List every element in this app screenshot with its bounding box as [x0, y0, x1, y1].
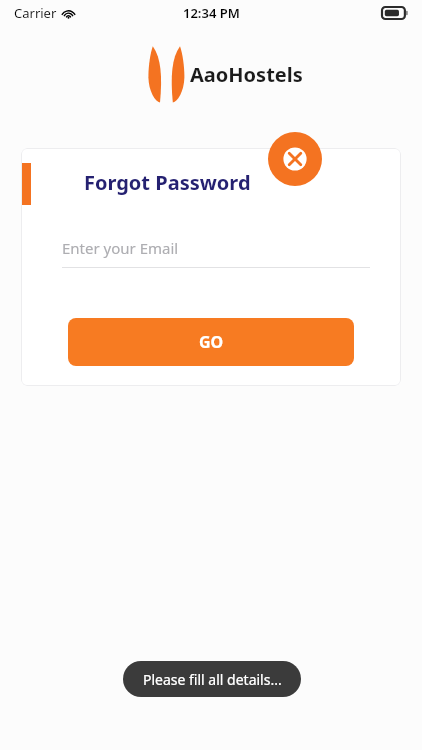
- staticText: AaoHostels: [190, 61, 303, 88]
- button[interactable]: Enter your Email: [62, 231, 370, 268]
- staticText: Forgot Password: [84, 169, 251, 196]
- staticText: GO: [199, 331, 224, 353]
- button[interactable]: Close: [268, 132, 322, 186]
- staticText: Enter your Email: [62, 238, 179, 258]
- staticText: 12:34 PM: [183, 4, 240, 22]
- button[interactable]: GO: [68, 318, 354, 366]
- staticText: Please fill all details...: [143, 670, 282, 689]
- staticText: Carrier: [14, 4, 57, 22]
